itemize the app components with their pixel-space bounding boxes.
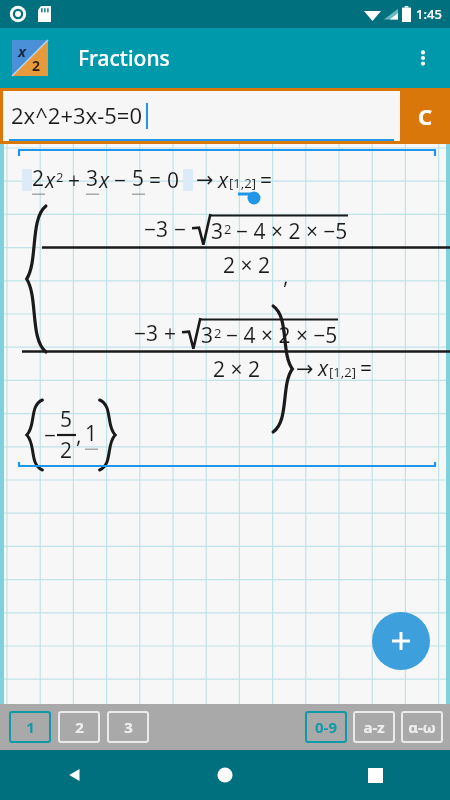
button[interactable]: C bbox=[400, 88, 450, 144]
staticText: x bbox=[218, 166, 229, 195]
button[interactable]: 3 bbox=[107, 711, 149, 743]
staticText: 1:45 bbox=[416, 5, 442, 23]
button[interactable]: 0-9 bbox=[305, 711, 347, 743]
staticText: −3 bbox=[134, 319, 159, 348]
button[interactable]: Home bbox=[150, 750, 300, 800]
staticText: = bbox=[360, 354, 373, 383]
button[interactable]: α-ω bbox=[401, 711, 443, 743]
button[interactable]: Add bbox=[372, 612, 430, 670]
staticText: 2 bbox=[32, 164, 45, 193]
staticText: 2 bbox=[224, 220, 232, 238]
button[interactable]: 2 bbox=[58, 711, 100, 743]
staticText: + bbox=[164, 319, 177, 348]
staticText: 3 bbox=[124, 717, 133, 737]
staticText: 3 bbox=[201, 321, 214, 348]
button[interactable]: More options bbox=[400, 35, 446, 81]
staticText: − bbox=[174, 215, 187, 244]
staticText: 1 bbox=[26, 717, 35, 737]
staticText: 2 bbox=[75, 717, 84, 737]
staticText: Fractions bbox=[78, 44, 170, 73]
staticText: 3 bbox=[86, 164, 99, 193]
button[interactable]: 2x^2+3x-5=0 bbox=[3, 91, 400, 141]
staticText: 2 bbox=[60, 436, 73, 465]
staticText: 2 bbox=[56, 168, 64, 186]
staticText: − 4 × 2 × −5 bbox=[226, 321, 338, 348]
staticText: x bbox=[45, 166, 56, 195]
staticText: 2 × 2 bbox=[223, 251, 270, 280]
staticText: − bbox=[44, 421, 57, 450]
button[interactable]: Back bbox=[0, 750, 150, 800]
staticText: → bbox=[296, 357, 314, 381]
staticText: 2 × 2 bbox=[213, 355, 260, 384]
staticText: [1,2] bbox=[329, 363, 356, 381]
staticText: 3 bbox=[211, 217, 224, 244]
staticText: → bbox=[196, 168, 214, 192]
staticText: 5 bbox=[132, 164, 145, 193]
staticText: x bbox=[318, 354, 329, 383]
staticText: x bbox=[18, 41, 27, 61]
staticText: 0-9 bbox=[315, 717, 337, 737]
staticText: 2 bbox=[214, 324, 222, 342]
button[interactable]: Recent apps bbox=[300, 750, 450, 800]
staticText: , bbox=[283, 262, 289, 291]
staticText: − bbox=[114, 166, 127, 195]
staticText: , bbox=[76, 421, 82, 450]
staticText: C bbox=[418, 101, 433, 131]
staticText: + bbox=[68, 166, 81, 195]
staticText: 5 bbox=[60, 405, 73, 434]
staticText: −3 bbox=[144, 215, 169, 244]
staticText: 1 bbox=[85, 419, 98, 448]
staticText: 2 bbox=[32, 56, 41, 75]
staticText: α-ω bbox=[408, 717, 436, 737]
staticText: 2x^2+3x-5=0 bbox=[11, 100, 143, 130]
staticText: = bbox=[260, 166, 273, 195]
button[interactable]: 1 bbox=[9, 711, 51, 743]
button[interactable]: a-z bbox=[353, 711, 395, 743]
staticText: x bbox=[99, 166, 110, 195]
staticText: = bbox=[149, 166, 162, 195]
staticText: − 4 × 2 × −5 bbox=[236, 217, 348, 244]
staticText: a-z bbox=[363, 717, 385, 737]
staticText: [1,2] bbox=[229, 174, 256, 192]
staticText: 0 bbox=[167, 166, 180, 195]
